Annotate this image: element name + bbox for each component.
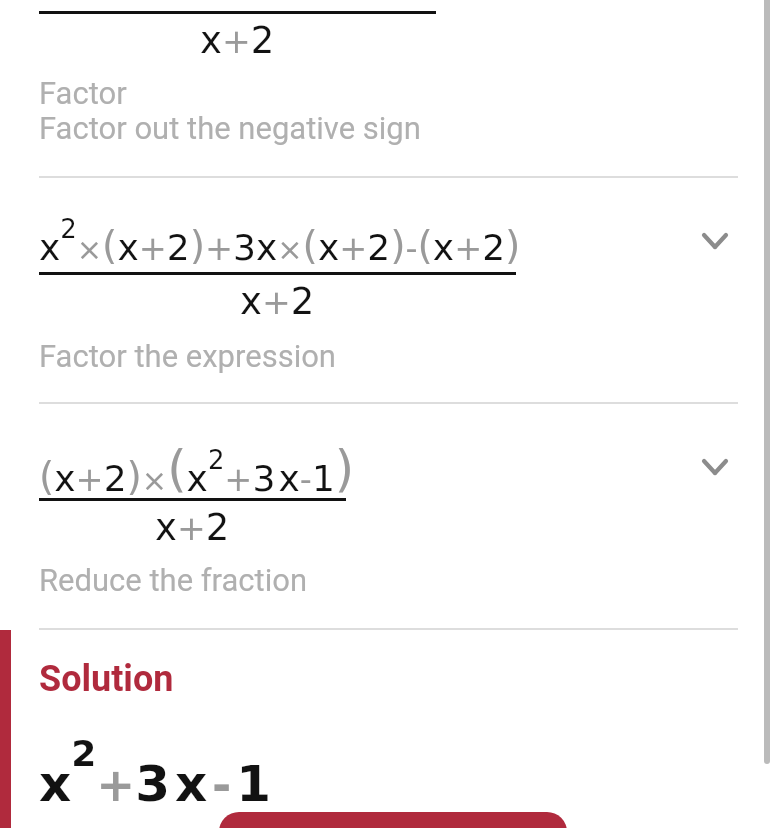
staticText: x+2 [200,19,275,62]
button[interactable]: Expand step [679,431,751,503]
button[interactable]: Expand step [679,205,751,277]
button[interactable]: Step: Factor the expression [0,179,776,402]
staticText: Factor out the negative sign [39,110,421,146]
staticText: Solution [39,658,174,700]
staticText: Reduce the fraction [39,562,308,598]
staticText: x+2 [155,506,230,549]
staticText: x2+3 x - 1 [39,733,272,812]
staticText: Factor the expression [39,338,336,374]
staticText: Factor [39,75,127,111]
button[interactable]: Step: Factor out the negative sign [0,0,776,176]
button[interactable]: Step: Reduce the fraction [0,405,776,628]
staticText: (x+2)×(x2+3 x-1) [39,440,355,500]
staticText: x2×(x+2)+3x×(x+2)-(x+2) [39,214,521,269]
staticText: x+2 [240,280,315,323]
button[interactable]: Next [219,812,567,828]
